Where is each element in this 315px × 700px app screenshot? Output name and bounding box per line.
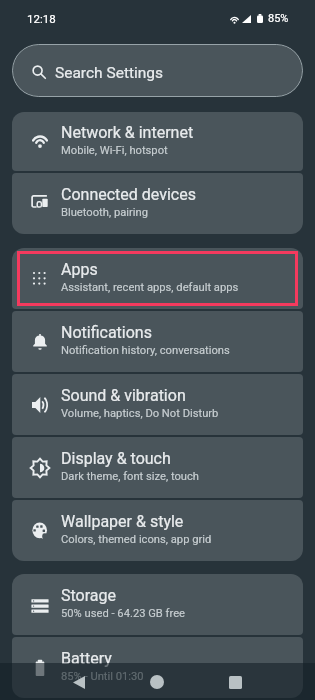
button[interactable]: Network & internet [12,112,303,171]
staticText: Volume, haptics, Do Not Disturb [61,407,219,420]
button[interactable]: Display & touch [12,437,303,498]
staticText: Dark theme, font size, touch [61,470,200,483]
button[interactable]: Search Settings [12,44,303,97]
button[interactable]: Connected devices [12,173,303,234]
button[interactable]: Sound & vibration [12,374,303,435]
button[interactable]: Apps [12,248,303,309]
staticText: 12:18 [27,12,56,25]
staticText: 50% used - 64.23 GB free [61,607,186,620]
staticText: Bluetooth, pairing [61,206,148,219]
staticText: 85% [268,12,289,25]
button[interactable]: Storage [12,574,303,635]
staticText: Notifications [61,323,152,342]
staticText: Notification history, conversations [61,344,230,357]
button[interactable]: Wallpaper & style [12,500,303,561]
staticText: Mobile, Wi-Fi, hotspot [61,144,168,157]
staticText: Storage [61,586,116,605]
button[interactable]: Recent apps [220,667,251,698]
button[interactable]: Back [63,667,94,698]
staticText: Apps [61,260,98,279]
button[interactable]: Home [141,666,172,697]
staticText: Display & touch [61,449,171,468]
button[interactable]: Notifications [12,311,303,372]
staticText: Battery [61,649,112,668]
staticText: Wallpaper & style [61,512,184,531]
staticText: 85% - Until 01:30 [61,670,144,683]
staticText: Colors, themed icons, app grid [61,533,212,546]
staticText: Connected devices [61,185,196,204]
staticText: Search Settings [55,64,164,82]
button[interactable]: Battery [12,637,303,698]
staticText: Assistant, recent apps, default apps [61,281,239,294]
staticText: Sound & vibration [61,386,186,405]
staticText: Network & internet [61,123,194,142]
